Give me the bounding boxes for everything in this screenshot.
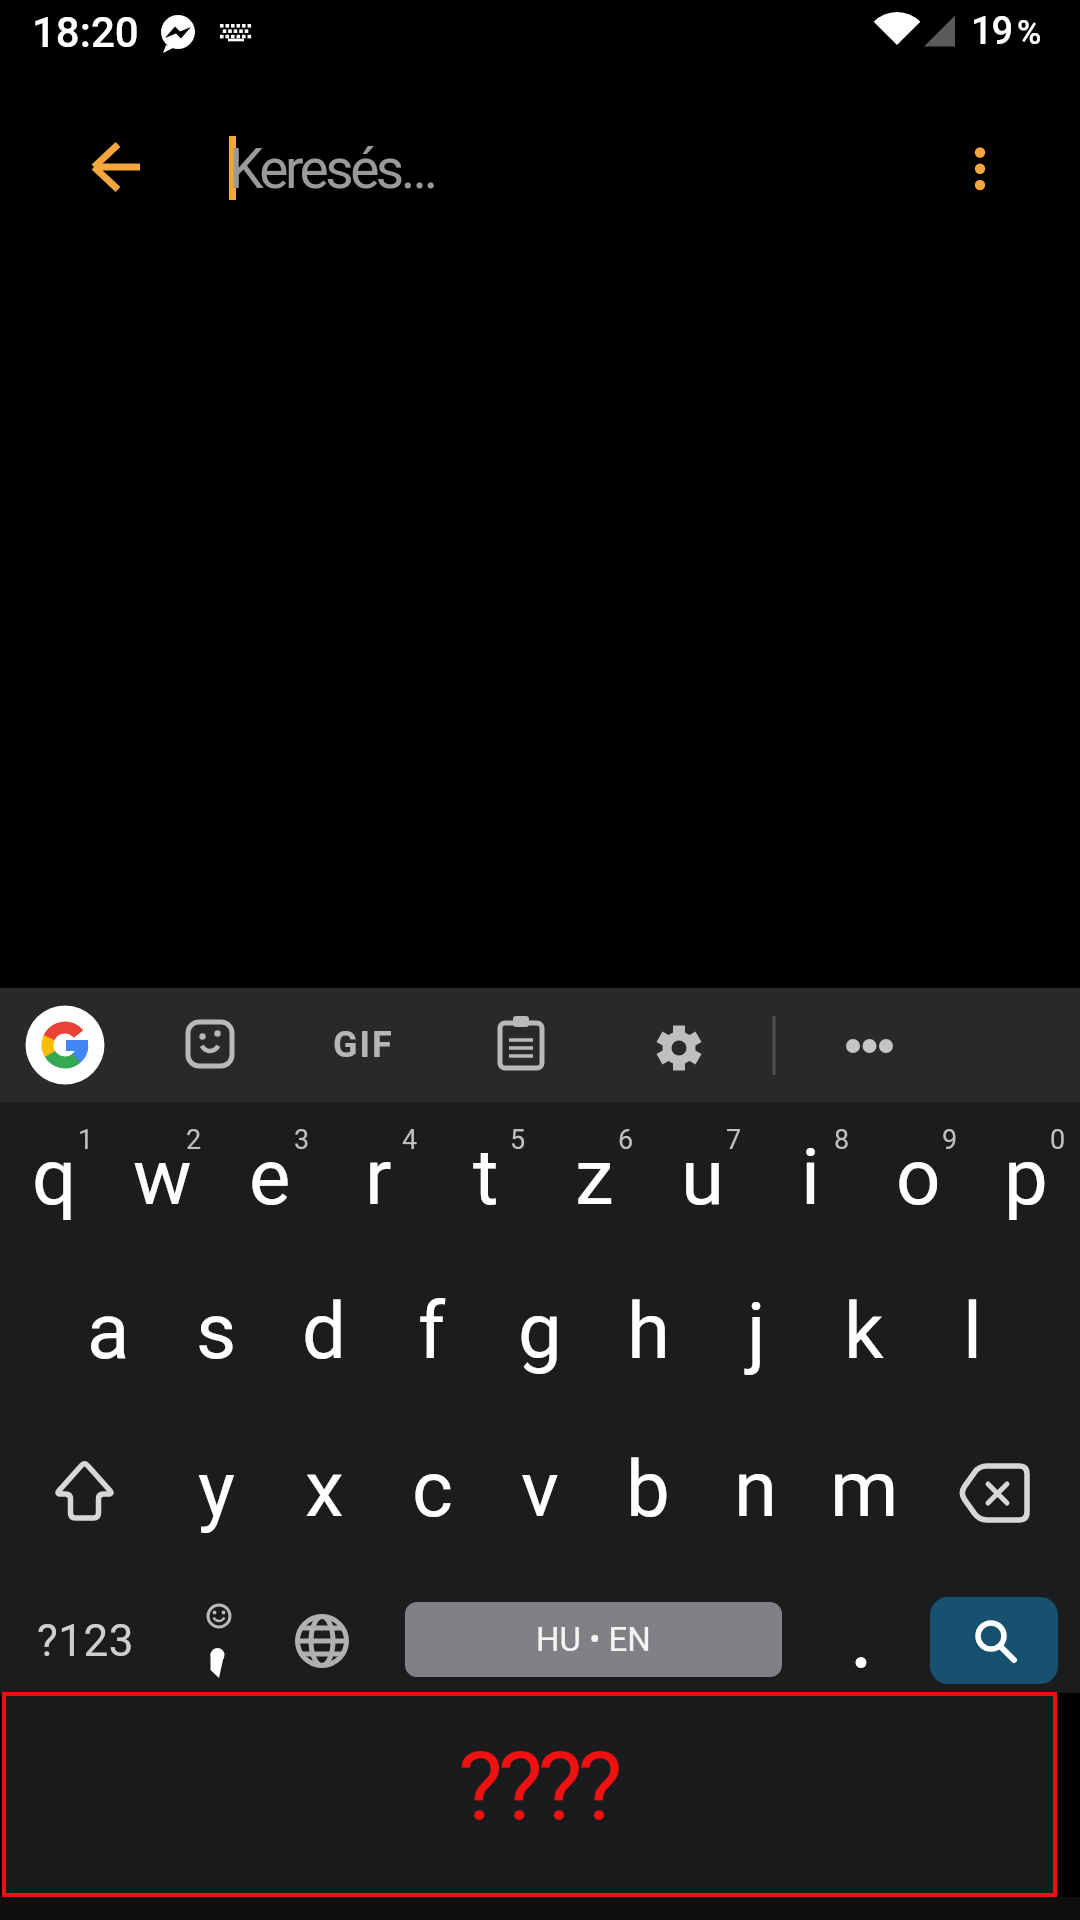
button[interactable]: e bbox=[218, 1102, 322, 1252]
staticText: i bbox=[801, 1132, 820, 1223]
staticText: n bbox=[734, 1444, 778, 1535]
staticText: x bbox=[305, 1444, 344, 1535]
staticText: s bbox=[196, 1286, 237, 1377]
button[interactable]: GIF bbox=[308, 1013, 418, 1077]
button[interactable] bbox=[0, 1414, 162, 1564]
button[interactable]: v bbox=[488, 1414, 592, 1564]
button[interactable]: g bbox=[488, 1256, 592, 1406]
staticText: Keresés… bbox=[229, 137, 434, 201]
staticText: q bbox=[32, 1132, 77, 1223]
button[interactable] bbox=[76, 127, 156, 207]
staticText: d bbox=[302, 1286, 346, 1377]
button[interactable]: q bbox=[2, 1102, 106, 1252]
staticText: e bbox=[249, 1132, 291, 1223]
button[interactable]: t bbox=[434, 1102, 538, 1252]
button[interactable]: u bbox=[650, 1102, 754, 1252]
button[interactable]: z bbox=[542, 1102, 646, 1252]
staticText: 2 bbox=[186, 1124, 202, 1156]
button[interactable]: Keresés… bbox=[229, 129, 569, 209]
staticText: ?123 bbox=[37, 1615, 134, 1667]
button[interactable] bbox=[830, 1005, 920, 1085]
button[interactable]: l bbox=[920, 1256, 1024, 1406]
button[interactable]: p bbox=[974, 1102, 1078, 1252]
staticText: 1 bbox=[78, 1124, 94, 1156]
staticText: t bbox=[473, 1132, 499, 1223]
button[interactable] bbox=[930, 1597, 1058, 1684]
button[interactable]: o bbox=[866, 1102, 970, 1252]
button[interactable] bbox=[165, 1580, 270, 1690]
staticText: g bbox=[518, 1286, 562, 1377]
staticText: z bbox=[575, 1132, 614, 1223]
button[interactable]: HU • EN bbox=[405, 1602, 782, 1677]
staticText: 5 bbox=[510, 1124, 526, 1156]
staticText: 8 bbox=[834, 1124, 850, 1156]
staticText: r bbox=[365, 1132, 392, 1223]
staticText: j bbox=[747, 1286, 766, 1377]
button[interactable]: a bbox=[56, 1256, 160, 1406]
staticText: k bbox=[844, 1286, 884, 1377]
staticText: m bbox=[830, 1444, 899, 1535]
button[interactable] bbox=[639, 1005, 719, 1085]
button[interactable]: i bbox=[758, 1102, 862, 1252]
button[interactable]: b bbox=[596, 1414, 700, 1564]
staticText: 4 bbox=[402, 1124, 418, 1156]
staticText: 19 bbox=[971, 9, 1013, 54]
button[interactable]: m bbox=[812, 1414, 916, 1564]
button[interactable]: j bbox=[704, 1256, 808, 1406]
button[interactable]: w bbox=[110, 1102, 214, 1252]
button[interactable]: s bbox=[164, 1256, 268, 1406]
button[interactable]: f bbox=[380, 1256, 484, 1406]
button[interactable]: k bbox=[812, 1256, 916, 1406]
staticText: o bbox=[896, 1132, 941, 1223]
staticText: 3 bbox=[294, 1124, 310, 1156]
staticText: 18:20 bbox=[32, 8, 139, 57]
button[interactable] bbox=[481, 1005, 561, 1085]
staticText: % bbox=[1017, 13, 1042, 52]
button[interactable]: x bbox=[272, 1414, 376, 1564]
button[interactable] bbox=[270, 1580, 375, 1690]
staticText: w bbox=[133, 1132, 192, 1223]
staticText: y bbox=[198, 1444, 235, 1535]
button[interactable] bbox=[170, 1005, 250, 1085]
staticText: 6 bbox=[618, 1124, 634, 1156]
staticText: v bbox=[521, 1444, 559, 1535]
button[interactable] bbox=[940, 127, 1020, 207]
button[interactable] bbox=[918, 1414, 1080, 1564]
button[interactable]: c bbox=[380, 1414, 484, 1564]
staticText: b bbox=[626, 1444, 670, 1535]
staticText: 0 bbox=[1050, 1124, 1066, 1156]
button[interactable]: ?123 bbox=[10, 1596, 160, 1686]
staticText: h bbox=[627, 1286, 670, 1377]
staticText: HU • EN bbox=[536, 1620, 651, 1659]
button[interactable] bbox=[25, 1005, 105, 1085]
staticText: GIF bbox=[333, 1024, 394, 1066]
staticText: 7 bbox=[726, 1124, 742, 1156]
staticText: ???? bbox=[458, 1731, 618, 1842]
button[interactable] bbox=[810, 1580, 910, 1690]
staticText: c bbox=[412, 1444, 453, 1535]
button[interactable]: y bbox=[164, 1414, 268, 1564]
button[interactable]: n bbox=[704, 1414, 808, 1564]
staticText: a bbox=[87, 1286, 130, 1377]
staticText: u bbox=[681, 1132, 724, 1223]
button[interactable]: r bbox=[326, 1102, 430, 1252]
staticText: 9 bbox=[942, 1124, 958, 1156]
staticText: p bbox=[1004, 1132, 1048, 1223]
staticText: l bbox=[963, 1286, 982, 1377]
button[interactable]: h bbox=[596, 1256, 700, 1406]
button[interactable]: d bbox=[272, 1256, 376, 1406]
staticText: f bbox=[418, 1286, 446, 1377]
